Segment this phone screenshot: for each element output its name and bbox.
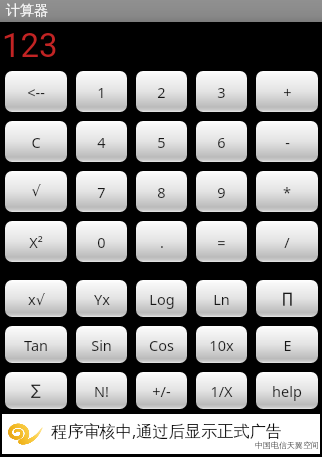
staticText: * xyxy=(283,182,291,202)
button[interactable]: Ln xyxy=(196,280,247,317)
staticText: <-- xyxy=(27,82,45,102)
staticText: 中国电信天翼空间 xyxy=(255,440,319,450)
staticText: 6 xyxy=(217,132,226,152)
staticText: = xyxy=(217,232,226,252)
button[interactable]: 8 xyxy=(136,171,187,212)
button[interactable]: 6 xyxy=(196,121,247,162)
staticText: 3 xyxy=(217,82,226,102)
staticText: 5 xyxy=(157,132,166,152)
staticText: 计算器 xyxy=(6,2,48,20)
button[interactable]: - xyxy=(256,121,318,162)
button[interactable]: + xyxy=(256,71,318,112)
button[interactable]: √ xyxy=(5,171,67,212)
staticText: x√ xyxy=(28,289,45,309)
staticText: 4 xyxy=(97,132,106,152)
staticText: C xyxy=(31,132,41,152)
staticText: Log xyxy=(149,289,175,309)
button[interactable]: <-- xyxy=(5,71,67,112)
button[interactable]: Tan xyxy=(5,326,67,363)
staticText: Yx xyxy=(94,289,110,309)
button[interactable]: 0 xyxy=(76,221,127,262)
staticText: 1 xyxy=(97,82,106,102)
staticText: N! xyxy=(94,381,109,401)
button[interactable]: 1/X xyxy=(196,372,247,409)
staticText: 123 xyxy=(2,26,58,65)
button[interactable]: / xyxy=(256,221,318,262)
staticText: help xyxy=(272,381,302,401)
staticText: X² xyxy=(29,232,43,252)
staticText: 7 xyxy=(97,182,106,202)
staticText: ∏ xyxy=(282,290,293,307)
staticText: 0 xyxy=(97,232,106,252)
staticText: + xyxy=(283,82,292,102)
button[interactable]: 程序审核中,通过后显示正式广告 xyxy=(2,414,320,454)
button[interactable]: ∏ xyxy=(256,280,318,317)
button[interactable]: . xyxy=(136,221,187,262)
button[interactable]: 3 xyxy=(196,71,247,112)
staticText: Sin xyxy=(91,335,112,355)
button[interactable]: N! xyxy=(76,372,127,409)
button[interactable]: 5 xyxy=(136,121,187,162)
staticText: Cos xyxy=(149,335,174,355)
staticText: 2 xyxy=(157,82,166,102)
button[interactable]: ∑ xyxy=(5,372,67,409)
button[interactable]: 2 xyxy=(136,71,187,112)
button[interactable]: C xyxy=(5,121,67,162)
button[interactable]: +/- xyxy=(136,372,187,409)
staticText: 9 xyxy=(217,182,226,202)
button[interactable]: 4 xyxy=(76,121,127,162)
staticText: E xyxy=(283,335,292,355)
button[interactable]: Sin xyxy=(76,326,127,363)
staticText: √ xyxy=(31,183,41,200)
staticText: Ln xyxy=(213,289,230,309)
staticText: . xyxy=(160,232,164,252)
button[interactable]: 1 xyxy=(76,71,127,112)
staticText: +/- xyxy=(152,381,171,401)
staticText: 程序审核中,通过后显示正式广告 xyxy=(51,420,282,442)
button[interactable]: E xyxy=(256,326,318,363)
staticText: - xyxy=(285,132,290,152)
staticText: 8 xyxy=(157,182,166,202)
button[interactable]: 9 xyxy=(196,171,247,212)
staticText: Tan xyxy=(24,335,48,355)
staticText: 1/X xyxy=(210,381,233,401)
staticText: ∑ xyxy=(31,382,41,399)
button[interactable]: help xyxy=(256,372,318,409)
button[interactable]: X² xyxy=(5,221,67,262)
staticText: 10x xyxy=(209,335,234,355)
button[interactable]: x√ xyxy=(5,280,67,317)
button[interactable]: Yx xyxy=(76,280,127,317)
button[interactable]: Log xyxy=(136,280,187,317)
button[interactable]: Cos xyxy=(136,326,187,363)
button[interactable]: 7 xyxy=(76,171,127,212)
button[interactable]: 10x xyxy=(196,326,247,363)
button[interactable]: = xyxy=(196,221,247,262)
button[interactable]: * xyxy=(256,171,318,212)
staticText: / xyxy=(284,232,290,252)
